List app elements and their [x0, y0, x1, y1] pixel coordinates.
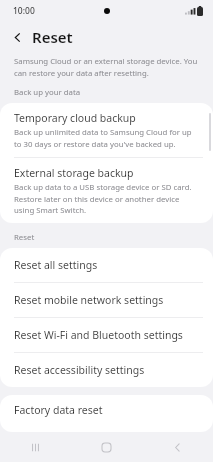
button[interactable]: Reset accessibility settings — [0, 353, 213, 387]
staticText: Reset — [32, 27, 73, 47]
staticText: Reset all settings — [14, 258, 98, 272]
staticText: 10:00 — [13, 5, 35, 17]
button[interactable]: Home — [71, 432, 142, 462]
button[interactable]: Reset all settings — [0, 248, 213, 282]
button[interactable]: Back — [6, 26, 28, 48]
button[interactable]: Reset mobile network settings — [0, 283, 213, 317]
staticText: Reset mobile network settings — [14, 293, 164, 307]
staticText: External storage backup — [14, 166, 134, 180]
button[interactable]: Recent apps — [0, 432, 71, 462]
button[interactable]: External storage backup — [0, 158, 213, 223]
staticText: Samsung Cloud or an external storage dev… — [14, 56, 199, 78]
staticText: Back up your data — [14, 87, 213, 98]
button[interactable]: Temporary cloud backup — [0, 103, 213, 157]
button[interactable]: Reset Wi-Fi and Bluetooth settings — [0, 318, 213, 352]
staticText: Factory data reset — [14, 403, 103, 417]
staticText: Back up data to a USB storage device or … — [14, 182, 201, 215]
staticText: Reset accessibility settings — [14, 363, 145, 377]
staticText: Back up unlimited data to Samsung Cloud … — [14, 127, 201, 149]
button[interactable]: Factory data reset — [0, 395, 213, 432]
staticText: Reset Wi-Fi and Bluetooth settings — [14, 328, 183, 342]
staticText: Reset — [14, 232, 213, 243]
staticText: Temporary cloud backup — [14, 111, 136, 125]
